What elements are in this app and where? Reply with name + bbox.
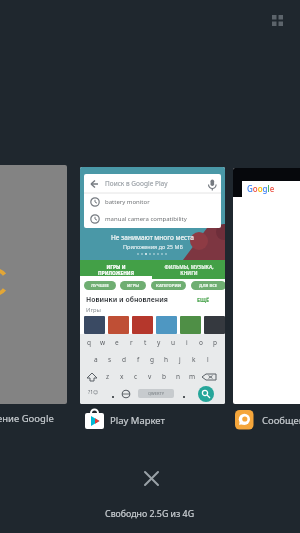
staticText: c — [134, 372, 138, 381]
staticText: Приложения до 25 МБ — [123, 243, 183, 250]
staticText: g — [150, 355, 154, 364]
staticText: m — [189, 372, 196, 381]
staticText: x — [120, 372, 124, 381]
staticText: ДЛЯ ВСЕ — [199, 283, 218, 289]
staticText: battery monitor — [105, 198, 150, 206]
staticText: Play Маркет — [110, 414, 165, 427]
staticText: e — [115, 338, 119, 347]
staticText: t — [144, 338, 147, 347]
staticText: manual camera compatibility — [105, 215, 187, 223]
staticText: z — [106, 372, 110, 381]
staticText: p — [213, 338, 217, 347]
staticText: ЕЩЁ — [197, 296, 210, 303]
staticText: q — [87, 338, 91, 347]
button[interactable]: ение Google — [0, 412, 54, 425]
staticText: ИГРЫ И ПРИЛОЖЕНИЯ — [98, 264, 134, 276]
staticText: Google — [247, 183, 275, 194]
staticText: b — [162, 372, 166, 381]
staticText: n — [176, 372, 181, 381]
staticText: u — [171, 338, 176, 347]
staticText: ение Google — [0, 412, 54, 425]
staticText: Поиск в Google Play — [105, 179, 168, 188]
staticText: Новинки и обновления — [86, 295, 168, 304]
staticText: s — [108, 355, 112, 364]
staticText: КАТЕГОРИИ — [156, 283, 182, 289]
staticText: Свободно 2.5G из 4G — [105, 508, 195, 520]
staticText: f — [137, 355, 140, 364]
staticText: ?1☺ — [88, 389, 99, 396]
staticText: Не занимают много места — [111, 233, 194, 242]
staticText: Сообщени — [262, 414, 300, 427]
staticText: ИГРЫ — [127, 283, 140, 289]
button[interactable]: Play Маркет — [84, 408, 174, 432]
staticText: o — [199, 338, 203, 347]
button[interactable] — [138, 465, 164, 491]
button[interactable]: Сообщени — [235, 408, 300, 432]
staticText: i — [186, 338, 188, 347]
staticText: a — [94, 355, 98, 364]
staticText: h — [164, 355, 169, 364]
button[interactable]: Google — [233, 168, 300, 404]
staticText: y — [157, 338, 161, 347]
staticText: r — [130, 338, 133, 347]
button[interactable]: Поиск в Google Play — [80, 167, 225, 404]
staticText: j — [179, 355, 181, 364]
staticText: v — [148, 372, 152, 381]
staticText: d — [122, 355, 126, 364]
staticText: Игры — [86, 306, 101, 314]
button[interactable] — [0, 165, 67, 404]
staticText: l — [207, 355, 209, 364]
staticText: k — [192, 355, 196, 364]
staticText: QWERTY — [148, 391, 165, 396]
button[interactable] — [268, 11, 288, 31]
staticText: ЛУЧШЕЕ — [91, 283, 109, 289]
staticText: w — [100, 338, 106, 347]
staticText: ФИЛЬМЫ, МУЗЫКА, КНИГИ — [164, 264, 214, 276]
